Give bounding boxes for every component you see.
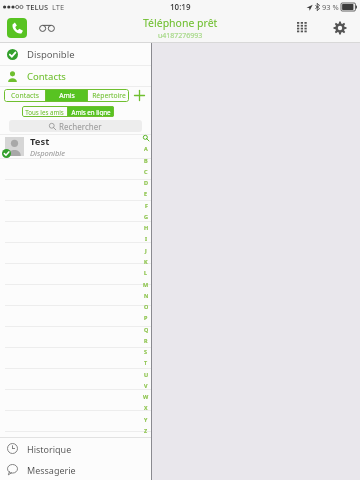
staticText: W (143, 393, 149, 400)
staticText: K (144, 258, 148, 265)
staticText: X (144, 404, 148, 411)
button[interactable]: Messagerie (0, 459, 151, 480)
button[interactable]: Voicemail (36, 17, 58, 39)
staticText: L (144, 269, 148, 276)
button[interactable]: Test (0, 135, 151, 158)
staticText: Répertoire (92, 91, 126, 100)
staticText: V (144, 382, 148, 389)
button[interactable]: Amis en ligne (68, 106, 114, 117)
staticText: Tous les amis (25, 108, 64, 116)
staticText: Amis en ligne (71, 108, 111, 116)
staticText: 10:19 (170, 1, 191, 12)
staticText: M (143, 281, 149, 288)
button[interactable]: Contacts (0, 66, 151, 86)
button[interactable]: Phone app (7, 18, 27, 38)
staticText: G (144, 213, 148, 220)
staticText: Téléphone prêt (143, 16, 218, 30)
staticText: T (144, 359, 148, 366)
staticText: J (145, 247, 147, 254)
staticText: R (144, 337, 148, 344)
staticText: Disponible (27, 48, 75, 61)
button[interactable]: Contacts (4, 89, 45, 102)
staticText: C (144, 168, 148, 175)
button[interactable]: Settings (328, 16, 352, 40)
staticText: Messagerie (27, 464, 76, 476)
staticText: B (144, 157, 148, 164)
button[interactable]: Répertoire (88, 89, 129, 102)
staticText: LTE (52, 2, 65, 12)
staticText: E (144, 190, 148, 197)
button[interactable]: Add contact (129, 87, 149, 104)
staticText: I (145, 235, 148, 242)
button[interactable]: Amis (46, 89, 87, 102)
staticText: H (144, 224, 149, 231)
staticText: u4187276993 (158, 31, 203, 41)
staticText: S (144, 348, 148, 355)
staticText: Test (30, 135, 50, 148)
staticText: Contacts (11, 91, 39, 100)
staticText: TELUS (26, 2, 49, 12)
staticText: Y (144, 416, 148, 423)
staticText: Contacts (27, 70, 66, 83)
staticText: Historique (27, 443, 72, 455)
staticText: O (144, 303, 149, 310)
button[interactable]: Historique (0, 438, 151, 459)
staticText: D (144, 179, 149, 186)
button[interactable]: Tous les amis (22, 106, 67, 117)
staticText: Amis (59, 91, 75, 100)
staticText: P (144, 314, 148, 321)
staticText: F (145, 202, 148, 209)
staticText: Q (144, 326, 149, 333)
staticText: 93 % (322, 2, 339, 12)
staticText: Disponible (30, 148, 66, 158)
button[interactable]: Disponible (0, 43, 151, 65)
staticText: A (144, 145, 148, 152)
staticText: U (144, 371, 149, 378)
staticText: Z (144, 427, 148, 434)
button[interactable]: Rechercher (9, 120, 142, 132)
staticText: N (144, 292, 149, 299)
staticText: Rechercher (59, 121, 102, 132)
button[interactable]: Keypad (290, 16, 314, 40)
